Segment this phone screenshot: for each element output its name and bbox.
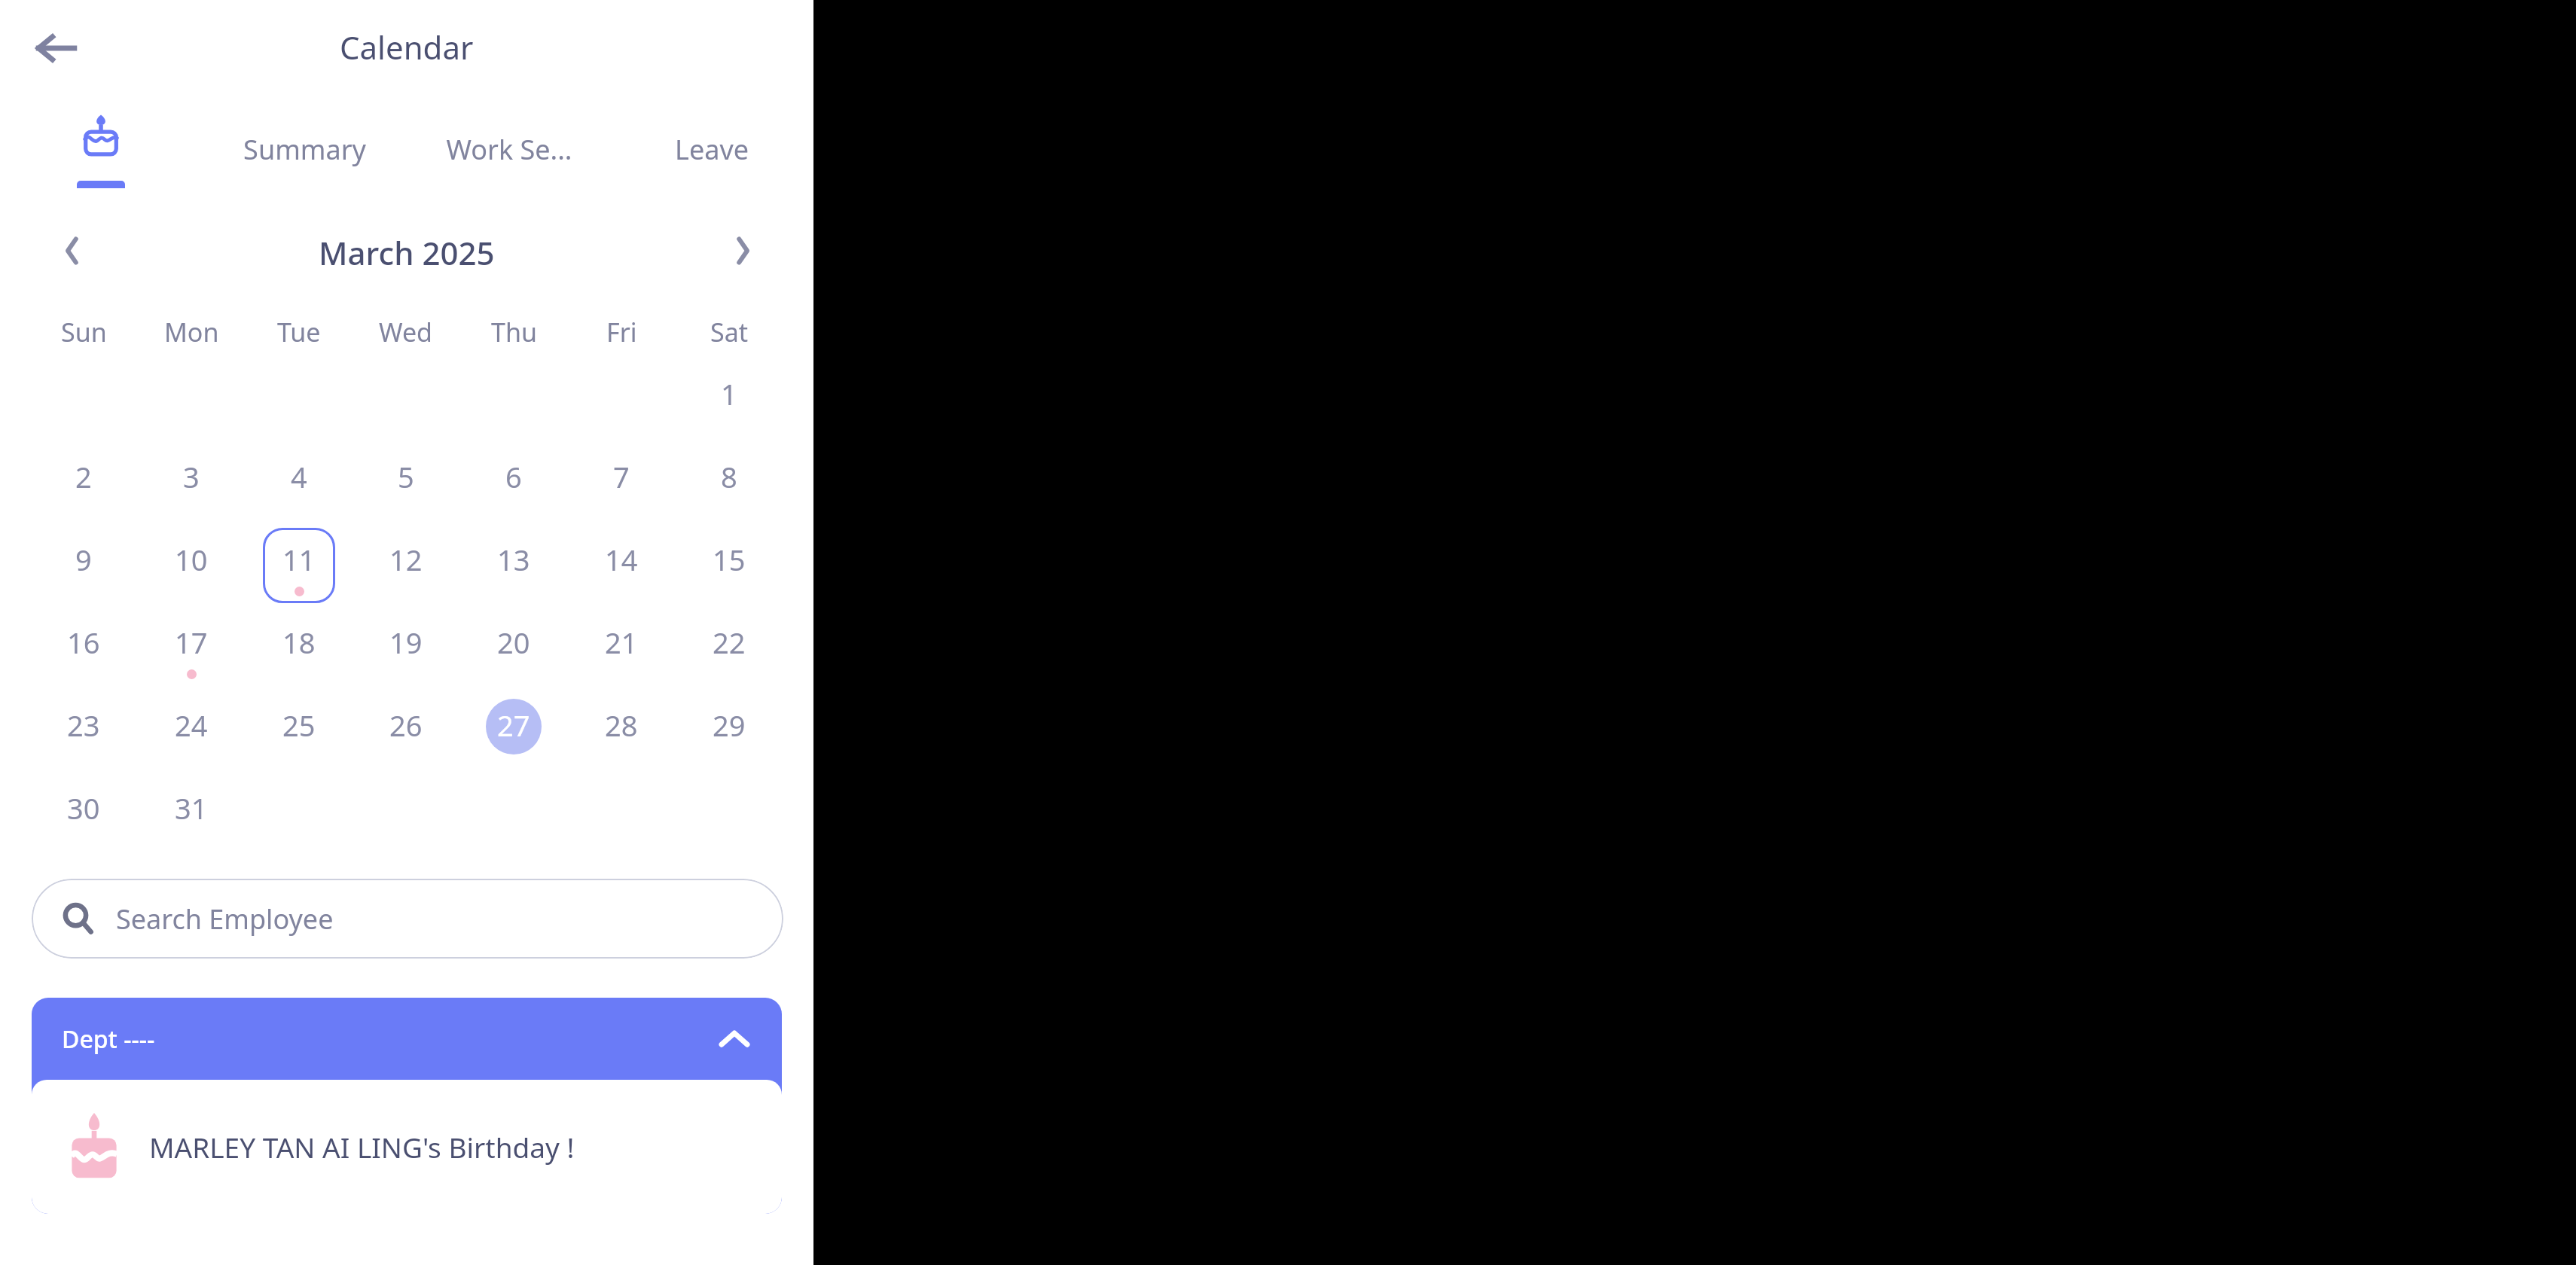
button[interactable]: 12 bbox=[368, 528, 444, 603]
button[interactable]: 2 bbox=[46, 445, 121, 520]
button[interactable]: 23 bbox=[46, 693, 121, 769]
staticText: 5 bbox=[398, 457, 414, 496]
staticText: 4 bbox=[291, 457, 307, 496]
staticText: 29 bbox=[713, 706, 746, 745]
button[interactable]: Back bbox=[18, 17, 95, 80]
staticText: Tue bbox=[277, 315, 321, 349]
button[interactable]: 5 bbox=[368, 445, 444, 520]
staticText: 20 bbox=[497, 623, 530, 662]
button[interactable]: 1 bbox=[691, 362, 767, 437]
staticText: 11 bbox=[282, 540, 316, 579]
button[interactable]: 18 bbox=[261, 611, 337, 686]
button[interactable]: Summary bbox=[206, 113, 402, 185]
button[interactable]: Search Employee bbox=[32, 879, 783, 959]
button[interactable]: 29 bbox=[691, 693, 767, 769]
staticText: Wed bbox=[379, 315, 433, 349]
staticText: Search Employee bbox=[116, 901, 334, 937]
staticText: MARLEY TAN AI LING's Birthday ! bbox=[149, 1128, 575, 1166]
staticText: Leave bbox=[675, 131, 749, 168]
staticText: 27 bbox=[497, 706, 530, 745]
button[interactable]: 17 bbox=[154, 611, 229, 686]
button[interactable]: 6 bbox=[476, 445, 551, 520]
button[interactable]: 13 bbox=[476, 528, 551, 603]
button[interactable]: Next month bbox=[708, 218, 777, 283]
staticText: 22 bbox=[713, 623, 746, 662]
button[interactable]: 30 bbox=[46, 776, 121, 852]
other: Collapse bbox=[717, 1024, 752, 1054]
staticText: 9 bbox=[75, 540, 92, 579]
staticText: March 2025 bbox=[319, 231, 495, 274]
staticText: Thu bbox=[491, 315, 537, 349]
button[interactable]: 9 bbox=[46, 528, 121, 603]
button[interactable]: Birthdays bbox=[53, 105, 149, 193]
staticText: 8 bbox=[721, 457, 737, 496]
button[interactable]: 10 bbox=[154, 528, 229, 603]
staticText: 19 bbox=[389, 623, 423, 662]
staticText: 31 bbox=[175, 788, 208, 828]
button[interactable]: 16 bbox=[46, 611, 121, 686]
button[interactable]: Previous month bbox=[38, 218, 107, 283]
staticText: Sun bbox=[61, 315, 107, 349]
button[interactable]: 15 bbox=[691, 528, 767, 603]
button[interactable]: 4 bbox=[261, 445, 337, 520]
staticText: Fri bbox=[606, 315, 637, 349]
staticText: 3 bbox=[183, 457, 200, 496]
staticText: 18 bbox=[282, 623, 316, 662]
staticText: 2 bbox=[75, 457, 92, 496]
staticText: 10 bbox=[175, 540, 208, 579]
button[interactable]: 3 bbox=[154, 445, 229, 520]
staticText: 21 bbox=[605, 623, 638, 662]
staticText: 28 bbox=[605, 706, 638, 745]
staticText: Dept ---- bbox=[62, 1023, 155, 1056]
button[interactable]: 31 bbox=[154, 776, 229, 852]
button[interactable]: 25 bbox=[261, 693, 337, 769]
staticText: Calendar bbox=[340, 26, 474, 69]
staticText: Mon bbox=[164, 315, 219, 349]
button[interactable]: 20 bbox=[476, 611, 551, 686]
button[interactable]: 27 bbox=[476, 693, 551, 769]
staticText: 12 bbox=[389, 540, 423, 579]
staticText: Work Se... bbox=[446, 131, 572, 168]
staticText: Sat bbox=[710, 315, 749, 349]
button[interactable]: 22 bbox=[691, 611, 767, 686]
button[interactable]: Dept ---- bbox=[32, 998, 782, 1080]
button[interactable]: 8 bbox=[691, 445, 767, 520]
button[interactable]: 28 bbox=[584, 693, 659, 769]
staticText: 14 bbox=[605, 540, 638, 579]
staticText: 13 bbox=[497, 540, 530, 579]
staticText: 24 bbox=[175, 706, 208, 745]
button[interactable]: 24 bbox=[154, 693, 229, 769]
staticText: 26 bbox=[389, 706, 423, 745]
button[interactable]: 21 bbox=[584, 611, 659, 686]
staticText: Summary bbox=[243, 131, 366, 168]
staticText: 15 bbox=[713, 540, 746, 579]
staticText: 7 bbox=[613, 457, 630, 496]
staticText: 23 bbox=[67, 706, 100, 745]
staticText: 1 bbox=[721, 374, 737, 413]
button[interactable]: 19 bbox=[368, 611, 444, 686]
button[interactable]: Work Se... bbox=[411, 113, 607, 185]
button[interactable]: 14 bbox=[584, 528, 659, 603]
staticText: 25 bbox=[282, 706, 316, 745]
staticText: 30 bbox=[67, 788, 100, 828]
button[interactable]: MARLEY TAN AI LING's Birthday ! bbox=[32, 1080, 782, 1214]
staticText: 6 bbox=[505, 457, 522, 496]
staticText: 17 bbox=[175, 623, 208, 662]
button[interactable]: Leave bbox=[614, 113, 810, 185]
staticText: 16 bbox=[67, 623, 100, 662]
button[interactable]: 7 bbox=[584, 445, 659, 520]
button[interactable]: 11 bbox=[261, 528, 337, 603]
button[interactable]: 26 bbox=[368, 693, 444, 769]
